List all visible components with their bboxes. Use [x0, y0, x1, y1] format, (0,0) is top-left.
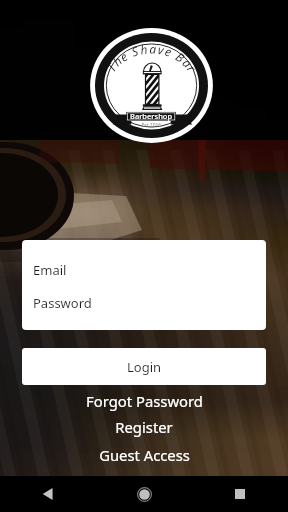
staticText: Forgot Password	[86, 391, 203, 411]
button[interactable]: Home	[96, 476, 192, 512]
button[interactable]: Password	[22, 285, 266, 330]
button[interactable]: Recent apps	[192, 476, 288, 512]
staticText: Email	[33, 261, 67, 279]
button[interactable]: Guest Access	[0, 442, 288, 468]
button[interactable]: Back	[0, 476, 96, 512]
staticText: Register	[115, 417, 173, 437]
button[interactable]: Register	[0, 414, 288, 440]
staticText: Password	[33, 294, 92, 312]
staticText: Login	[127, 358, 162, 376]
staticText: Guest Access	[99, 445, 190, 465]
button[interactable]: Login	[22, 348, 266, 385]
button[interactable]: Email	[22, 240, 266, 285]
button[interactable]: Forgot Password	[0, 388, 288, 414]
